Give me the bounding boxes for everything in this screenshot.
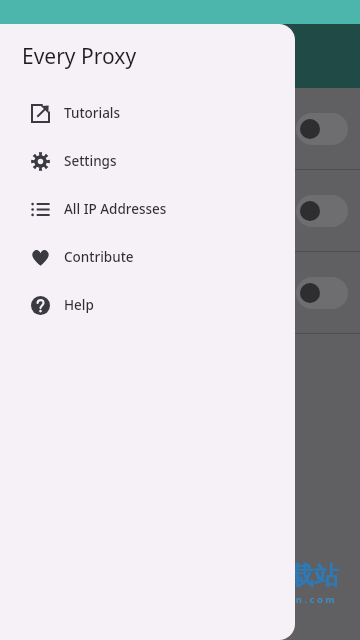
button[interactable]: Toggle [0, 252, 360, 333]
button[interactable]: Toggle [296, 277, 348, 309]
button[interactable]: Toggle [0, 170, 360, 251]
button[interactable]: Toggle [296, 195, 348, 227]
staticText: All IP Addresses [64, 200, 167, 218]
staticText: w w w . d 7 d o w n . c o m [215, 593, 335, 606]
button[interactable]: Toggle [296, 113, 348, 145]
staticText: Settings [64, 152, 117, 170]
button[interactable]: Settings [0, 137, 295, 185]
staticText: Tutorials [64, 104, 121, 122]
button[interactable]: Tutorials [0, 89, 295, 137]
staticText: Help [64, 296, 94, 314]
staticText: 第七下载站 [214, 560, 339, 591]
button[interactable]: Help [0, 281, 295, 329]
staticText: Contribute [64, 248, 134, 266]
button[interactable]: Toggle [0, 88, 360, 169]
button[interactable]: All IP Addresses [0, 185, 295, 233]
button[interactable]: Contribute [0, 233, 295, 281]
staticText: Every Proxy [22, 42, 137, 71]
